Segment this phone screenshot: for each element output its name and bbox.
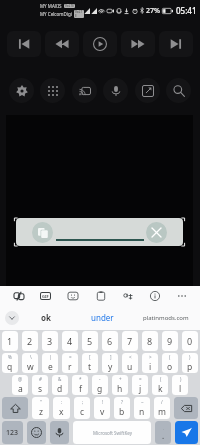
button[interactable]: Info [146, 287, 163, 304]
button[interactable]: 9 [162, 331, 178, 351]
button[interactable]: Microsoft SwiftKey [73, 421, 151, 444]
button[interactable]: = [62, 353, 78, 373]
staticText: g [97, 383, 103, 395]
staticText: f [79, 383, 82, 395]
button[interactable]: Next track [159, 31, 193, 57]
staticText: k [158, 383, 163, 395]
staticText: p [187, 361, 193, 373]
staticText: * [79, 376, 82, 382]
button[interactable]: Play [83, 31, 117, 57]
button[interactable]: Search [166, 78, 191, 103]
button[interactable]: under [73, 305, 132, 330]
staticText: 8 [147, 335, 153, 347]
button[interactable]: , [155, 421, 171, 444]
staticText: + [119, 376, 122, 382]
staticText: 0 [187, 335, 193, 347]
button[interactable]: Shift [2, 397, 28, 419]
staticText: VoLTE [75, 10, 83, 18]
button[interactable]: 4 [62, 331, 78, 351]
button[interactable]: 7 [122, 331, 138, 351]
button[interactable]: 3 [42, 331, 58, 351]
button[interactable]: SwiftKey [10, 287, 27, 304]
button[interactable]: Cast screen [72, 78, 97, 103]
button[interactable]: ) [182, 353, 198, 373]
staticText: x [59, 406, 64, 418]
button[interactable]: Paste [32, 222, 53, 243]
staticText: n [139, 406, 145, 418]
button[interactable]: GIF [37, 287, 54, 304]
staticText: " [40, 399, 42, 405]
staticText: \ [30, 354, 32, 360]
staticText: @ [18, 376, 23, 382]
button[interactable]: # [32, 375, 48, 395]
button[interactable]: & [52, 375, 68, 395]
button[interactable]: = [132, 375, 148, 395]
button[interactable]: platinmods.com [132, 305, 200, 330]
button[interactable]: % [2, 353, 18, 373]
button[interactable]: Send [175, 421, 198, 444]
staticText: = [139, 376, 142, 382]
staticText: ; [82, 399, 84, 405]
button[interactable]: Close [146, 222, 167, 243]
button[interactable]: Emoji [27, 421, 46, 444]
button[interactable]: * [72, 375, 88, 395]
button[interactable]: Stickers [64, 287, 81, 304]
staticText: . [162, 430, 165, 441]
button[interactable]: " [32, 397, 49, 419]
button[interactable]: 123 [2, 421, 23, 444]
staticText: v [100, 406, 105, 418]
button[interactable]: < [122, 353, 138, 373]
button[interactable]: Fast forward [121, 31, 155, 57]
button[interactable]: + [112, 375, 128, 395]
staticText: 27% [146, 6, 160, 16]
button[interactable]: ; [74, 397, 90, 419]
button[interactable]: - [92, 375, 108, 395]
button[interactable]: ) [172, 375, 188, 395]
button[interactable]: Settings [9, 78, 34, 103]
staticText: i [149, 361, 152, 373]
staticText: / [161, 399, 163, 405]
staticText: ( [160, 376, 162, 382]
button[interactable]: Voice input [50, 421, 69, 444]
button[interactable]: More options [173, 287, 190, 304]
button[interactable]: | [42, 353, 58, 373]
button[interactable]: : [53, 397, 70, 419]
staticText: r [68, 361, 72, 373]
button[interactable]: > [142, 353, 158, 373]
button[interactable]: ] [102, 353, 118, 373]
staticText: = [69, 354, 72, 360]
button[interactable]: Translate [119, 287, 136, 304]
staticText: 6 [107, 335, 113, 347]
button[interactable]: Clipboard [92, 287, 109, 304]
button[interactable]: ? [114, 397, 130, 419]
staticText: Microsoft SwiftKey [93, 430, 132, 436]
button[interactable]: Previous track [7, 31, 41, 57]
button[interactable]: Open link [135, 78, 160, 103]
button[interactable]: / [154, 397, 170, 419]
button[interactable]: ( [152, 375, 168, 395]
button[interactable]: \ [22, 353, 38, 373]
button[interactable]: Apps [40, 78, 65, 103]
button[interactable]: @ [12, 375, 28, 395]
staticText: GIF [42, 294, 49, 299]
staticText: % [8, 354, 12, 360]
button[interactable]: Rewind [45, 31, 79, 57]
button[interactable]: 6 [102, 331, 118, 351]
button[interactable]: ! [94, 397, 110, 419]
button[interactable]: 0 [182, 331, 198, 351]
staticText: < [129, 354, 132, 360]
button[interactable]: 8 [142, 331, 158, 351]
button[interactable]: 2 [22, 331, 38, 351]
button[interactable]: Expand suggestions [5, 311, 19, 325]
button[interactable]: [ [82, 353, 98, 373]
button[interactable]: Microphone [103, 78, 128, 103]
staticText: 9 [167, 335, 173, 347]
staticText: b [119, 406, 125, 418]
button[interactable]: 1 [2, 331, 18, 351]
staticText: z [39, 406, 43, 418]
button[interactable]: ok [19, 305, 73, 330]
button[interactable]: ( [162, 353, 178, 373]
button[interactable]: 5 [82, 331, 98, 351]
button[interactable]: Backspace [174, 397, 198, 419]
button[interactable]: ~ [134, 397, 150, 419]
